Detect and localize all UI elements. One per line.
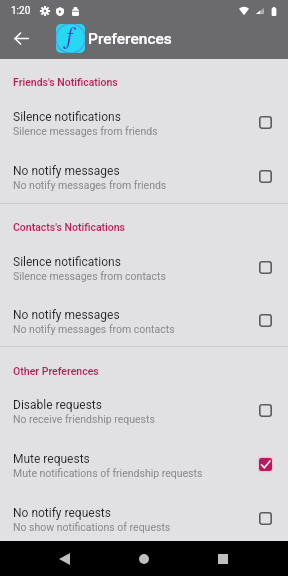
staticText: No receive friendship requests — [13, 413, 155, 425]
staticText: Silence messages from friends — [13, 125, 158, 137]
staticText: Silence notifications — [13, 110, 121, 124]
staticText: Disable requests — [13, 398, 102, 412]
button[interactable]: No notify requests — [0, 491, 288, 545]
staticText: No notify messages — [13, 164, 120, 178]
staticText: No notify requests — [13, 506, 111, 520]
staticText: Silence notifications — [13, 255, 121, 269]
button[interactable]: No notify messages — [0, 293, 288, 347]
button[interactable]: Disable requests — [0, 383, 288, 437]
button[interactable]: Silence notifications — [0, 95, 288, 149]
button[interactable]: Navigate up — [3, 22, 40, 55]
button[interactable]: Silence notifications — [0, 240, 288, 294]
staticText: No show notifications of requests — [13, 521, 171, 533]
staticText: f — [66, 26, 73, 49]
staticText: Other Preferences — [13, 365, 99, 377]
staticText: No notify messages from contacts — [13, 323, 175, 335]
staticText: Contacts's Notifications — [13, 221, 126, 233]
button[interactable]: No notify messages — [0, 149, 288, 203]
staticText: Mute requests — [13, 452, 90, 466]
staticText: 1:20 — [11, 5, 31, 17]
staticText: No notify messages from friends — [13, 179, 167, 191]
staticText: Silence messages from contacts — [13, 270, 166, 282]
button[interactable]: Mute requests — [0, 437, 288, 491]
staticText: No notify messages — [13, 308, 120, 322]
button[interactable]: Recent apps — [199, 541, 247, 576]
button[interactable]: Back — [40, 541, 88, 576]
button[interactable]: Home — [120, 541, 168, 576]
staticText: Friends's Notifications — [13, 76, 118, 88]
staticText: Preferences — [88, 30, 172, 48]
staticText: Mute notifications of friendship request… — [13, 467, 203, 479]
